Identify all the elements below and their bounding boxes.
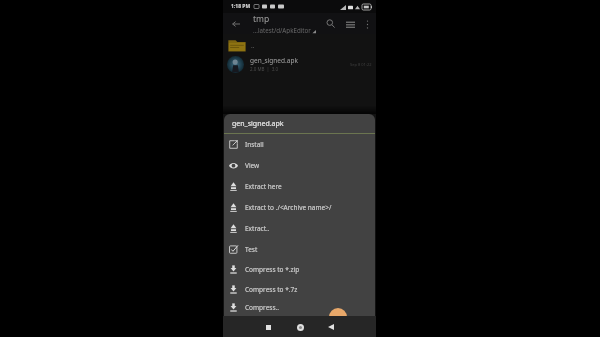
button[interactable]: View bbox=[224, 155, 375, 176]
button[interactable]: Search bbox=[320, 13, 341, 34]
button[interactable]: Add bbox=[329, 308, 347, 326]
button[interactable]: Compress to *.7z bbox=[224, 280, 375, 299]
button[interactable]: Home bbox=[293, 320, 307, 334]
staticText: Test bbox=[245, 245, 258, 254]
staticText: 2.0 MB | 3.0 bbox=[250, 66, 279, 72]
button[interactable]: .. bbox=[223, 38, 376, 52]
staticText: 1:18 PM bbox=[231, 3, 251, 10]
staticText: Compress to *.zip bbox=[245, 265, 300, 274]
staticText: gen_signed.apk bbox=[232, 119, 284, 129]
staticText: View bbox=[245, 161, 260, 170]
staticText: .. bbox=[251, 41, 255, 50]
staticText: ...latest/d/ApkEditor bbox=[253, 26, 311, 34]
button[interactable]: Back bbox=[324, 320, 338, 334]
staticText: Compress to *.7z bbox=[245, 285, 298, 294]
staticText: gen_signed.apk bbox=[250, 56, 298, 65]
staticText: Extract here bbox=[245, 182, 282, 191]
button[interactable]: Extract.. bbox=[224, 218, 375, 239]
staticText: tmp bbox=[253, 13, 270, 25]
button[interactable]: More options bbox=[359, 16, 375, 32]
staticText: Compress.. bbox=[245, 303, 280, 312]
button[interactable]: Extract here bbox=[224, 176, 375, 197]
staticText: Extract to ./<Archive name>/ bbox=[245, 203, 332, 212]
button[interactable]: Extract to ./<Archive name>/ bbox=[224, 197, 375, 218]
button[interactable]: Recent apps bbox=[261, 320, 275, 334]
button[interactable]: Back bbox=[229, 17, 242, 30]
staticText: Install bbox=[245, 140, 264, 149]
button[interactable]: Compress to *.zip bbox=[224, 259, 375, 280]
button[interactable]: Compress.. bbox=[224, 299, 375, 316]
button[interactable]: gen_signed.apk bbox=[223, 54, 376, 74]
button[interactable]: Test bbox=[224, 239, 375, 259]
button[interactable]: Change view bbox=[341, 15, 359, 33]
staticText: Extract.. bbox=[245, 224, 270, 233]
staticText: Sep 8 01:22 bbox=[350, 62, 372, 67]
button[interactable]: Install bbox=[224, 134, 375, 155]
